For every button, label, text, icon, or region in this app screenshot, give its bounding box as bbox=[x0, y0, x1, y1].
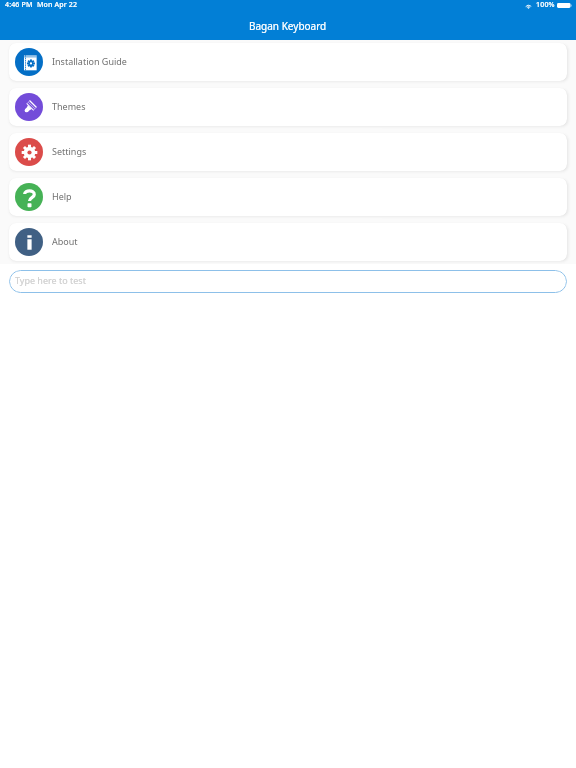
button[interactable]: Type here to test bbox=[9, 270, 567, 293]
button[interactable]: Settings bbox=[9, 133, 567, 171]
button[interactable]: About bbox=[9, 223, 567, 261]
button[interactable]: Help bbox=[9, 178, 567, 216]
button[interactable]: Themes bbox=[9, 88, 567, 126]
staticText: Settings bbox=[52, 145, 87, 157]
staticText: Bagan Keyboard bbox=[249, 19, 327, 33]
staticText: About bbox=[52, 235, 78, 247]
staticText: 100% bbox=[536, 0, 555, 10]
staticText: Themes bbox=[52, 100, 86, 112]
staticText: Installation Guide bbox=[52, 55, 127, 67]
staticText: 4:46 PM bbox=[5, 0, 33, 10]
staticText: Help bbox=[52, 190, 72, 202]
staticText: Type here to test bbox=[15, 274, 86, 286]
staticText: Mon Apr 22 bbox=[37, 0, 78, 10]
button[interactable]: Installation Guide bbox=[9, 43, 567, 81]
